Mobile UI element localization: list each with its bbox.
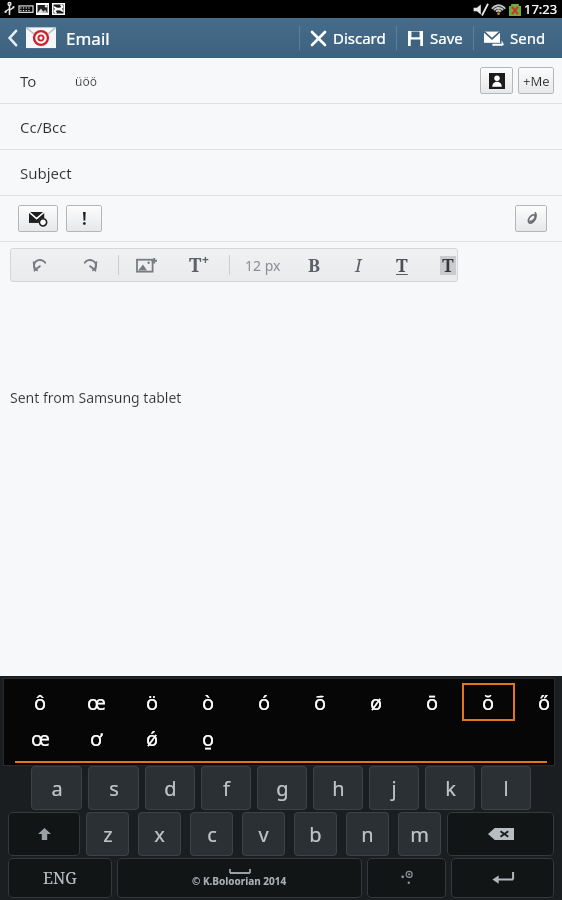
button[interactable]: n <box>346 812 389 856</box>
button[interactable]: Backspace <box>447 812 554 856</box>
button[interactable]: o̱ <box>182 721 235 755</box>
button[interactable]: Schedule send <box>18 205 58 232</box>
staticText: T <box>189 252 202 278</box>
staticText: T <box>396 253 408 278</box>
button[interactable]: f <box>201 766 251 810</box>
button[interactable]: d <box>145 766 195 810</box>
staticText: ő <box>538 689 551 716</box>
button[interactable]: l <box>481 766 531 810</box>
staticText: Save <box>430 28 463 48</box>
staticText: 17:23 <box>524 0 558 18</box>
button[interactable]: s <box>88 766 139 810</box>
button[interactable]: Attach <box>515 205 547 232</box>
button[interactable]: 12 px <box>242 252 284 279</box>
staticText: ó <box>258 689 271 716</box>
button[interactable]: œ <box>70 683 123 721</box>
button[interactable]: c <box>190 812 233 856</box>
button[interactable]: ơ <box>70 721 123 755</box>
button[interactable]: ô <box>14 683 67 721</box>
staticText: œ <box>87 689 106 716</box>
staticText: Send <box>510 28 546 48</box>
staticText: üöö <box>75 73 97 89</box>
button[interactable]: Sent from Samsung tablet <box>0 288 562 676</box>
staticText: ô <box>34 689 47 716</box>
button[interactable]: Pick contact <box>480 67 513 94</box>
staticText: + <box>202 251 209 267</box>
staticText: õ <box>314 689 327 716</box>
other: Back <box>6 28 20 48</box>
staticText: 12 px <box>245 256 281 275</box>
staticText: Subject <box>20 163 72 183</box>
staticText: ò <box>202 689 215 716</box>
staticText: m <box>410 821 429 848</box>
button[interactable]: Cc/Bcc <box>0 104 562 149</box>
button[interactable]: ǿ <box>126 721 179 755</box>
button[interactable]: a <box>31 766 82 810</box>
button[interactable]: ò <box>182 683 235 721</box>
button[interactable]: z <box>86 812 129 856</box>
staticText: © K.Boloorian 2014 <box>192 874 287 888</box>
button[interactable]: Shift <box>8 812 80 856</box>
button[interactable]: Undo <box>30 255 51 276</box>
staticText: Email <box>66 27 110 50</box>
button[interactable]: Subject <box>0 150 562 195</box>
staticText: ö <box>146 689 159 716</box>
staticText: ŏ <box>482 689 495 716</box>
staticText: ø <box>370 689 383 716</box>
staticText: a <box>51 775 63 802</box>
button[interactable]: Text colour <box>394 251 410 280</box>
button[interactable]: g <box>257 766 307 810</box>
button[interactable]: Text size <box>187 250 211 280</box>
button[interactable]: Back <box>0 18 118 58</box>
button[interactable]: v <box>242 812 285 856</box>
button[interactable]: Save <box>397 18 473 58</box>
button[interactable]: +Me <box>518 67 554 94</box>
staticText: z <box>103 821 113 848</box>
button[interactable]: Discard <box>300 18 396 58</box>
staticText: o̱ <box>202 725 215 752</box>
staticText: ENG <box>43 867 77 889</box>
button[interactable]: Priority <box>66 205 102 232</box>
button[interactable]: Send <box>474 18 556 58</box>
button[interactable]: ó <box>238 683 291 721</box>
staticText: œ <box>31 725 50 752</box>
button[interactable]: Enter <box>451 858 554 898</box>
button[interactable]: ö <box>126 683 179 721</box>
staticText: h <box>332 775 345 802</box>
button[interactable]: ő <box>518 683 562 721</box>
button[interactable]: Insert image <box>135 255 159 276</box>
staticText: k <box>445 775 456 802</box>
staticText: ō <box>426 689 439 716</box>
staticText: x <box>154 821 165 848</box>
button[interactable]: ŏ <box>462 683 515 721</box>
staticText: T <box>442 253 454 278</box>
staticText: l <box>503 775 509 802</box>
button[interactable]: j <box>369 766 419 810</box>
staticText: Cc/Bcc <box>20 117 67 137</box>
button[interactable]: m <box>398 812 441 856</box>
staticText: c <box>207 821 217 848</box>
button[interactable]: Redo <box>79 255 100 276</box>
staticText: s <box>109 775 119 802</box>
button[interactable]: õ <box>294 683 347 721</box>
button[interactable]: Symbols <box>367 858 446 898</box>
button[interactable]: ō <box>406 683 459 721</box>
button[interactable]: x <box>138 812 181 856</box>
staticText: ơ <box>90 725 103 752</box>
staticText: n <box>361 821 374 848</box>
staticText: ǿ <box>146 725 159 752</box>
button[interactable]: Italic <box>353 251 364 280</box>
button[interactable]: b <box>294 812 337 856</box>
button[interactable]: Highlight <box>438 251 458 280</box>
button[interactable]: Language <box>8 858 112 898</box>
button[interactable]: Space <box>117 858 362 898</box>
button[interactable]: ø <box>350 683 403 721</box>
staticText: +Me <box>523 72 550 90</box>
staticText: Discard <box>333 28 386 48</box>
staticText: B <box>308 253 321 278</box>
staticText: f <box>223 775 230 802</box>
button[interactable]: k <box>425 766 475 810</box>
button[interactable]: œ <box>14 721 67 755</box>
button[interactable]: Bold <box>306 251 323 280</box>
button[interactable]: h <box>313 766 363 810</box>
